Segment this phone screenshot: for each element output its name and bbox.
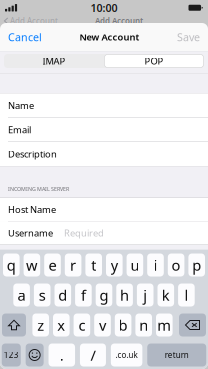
- button[interactable]: w: [24, 253, 40, 276]
- button[interactable]: h: [116, 283, 133, 306]
- button[interactable]: .co.uk: [111, 343, 142, 366]
- button[interactable]: j: [137, 283, 153, 306]
- staticText: Host Name: [8, 203, 56, 216]
- button[interactable]: f: [75, 283, 92, 306]
- staticText: /: [90, 345, 95, 365]
- button[interactable]: d: [54, 283, 71, 306]
- button[interactable]: IMAP: [4, 54, 104, 68]
- button[interactable]: v: [94, 313, 111, 336]
- button[interactable]: i: [147, 253, 164, 276]
- button[interactable]: q: [3, 253, 20, 276]
- button[interactable]: r: [65, 253, 81, 276]
- staticText: New Account: [79, 31, 139, 43]
- button[interactable]: m: [156, 313, 173, 336]
- staticText: m: [157, 315, 171, 335]
- button[interactable]: z: [32, 313, 49, 336]
- staticText: w: [26, 255, 38, 275]
- button[interactable]: y: [106, 253, 123, 276]
- staticText: h: [120, 285, 129, 305]
- button[interactable]: b: [115, 313, 131, 336]
- staticText: q: [7, 255, 16, 275]
- button[interactable]: 123: [2, 343, 21, 366]
- staticText: Username: [8, 227, 53, 239]
- staticText: t: [91, 255, 96, 275]
- staticText: INCOMING MAIL SERVER: [8, 185, 69, 192]
- button[interactable]: l: [178, 283, 195, 306]
- button[interactable]: Cancel: [0, 23, 50, 51]
- button[interactable]: /: [80, 343, 106, 366]
- staticText: .co.uk: [116, 350, 138, 360]
- button[interactable]: g: [96, 283, 112, 306]
- staticText: Email: [8, 124, 31, 136]
- staticText: u: [130, 255, 139, 275]
- button[interactable]: e: [44, 253, 61, 276]
- button[interactable]: .: [48, 343, 75, 366]
- staticText: c: [78, 315, 85, 335]
- button[interactable]: Save: [169, 23, 208, 51]
- staticText: Name: [8, 99, 34, 112]
- button[interactable]: a: [13, 283, 30, 306]
- button[interactable]: o: [168, 253, 184, 276]
- staticText: n: [139, 315, 148, 335]
- button[interactable]: Delete: [179, 313, 206, 336]
- staticText: 123: [4, 350, 19, 360]
- staticText: Cancel: [8, 30, 42, 44]
- staticText: Required: [64, 227, 104, 239]
- staticText: d: [58, 285, 67, 305]
- staticText: a: [18, 285, 26, 305]
- staticText: Description: [8, 148, 57, 160]
- button[interactable]: c: [74, 313, 90, 336]
- button[interactable]: k: [157, 283, 174, 306]
- staticText: j: [143, 285, 147, 305]
- staticText: o: [172, 255, 181, 275]
- staticText: e: [48, 255, 56, 275]
- staticText: v: [99, 315, 106, 335]
- staticText: l: [184, 285, 188, 305]
- staticText: g: [99, 285, 108, 305]
- button[interactable]: Email: [0, 118, 208, 142]
- staticText: .: [60, 345, 64, 365]
- button[interactable]: s: [34, 283, 50, 306]
- staticText: Save: [177, 30, 200, 44]
- button[interactable]: x: [53, 313, 70, 336]
- button[interactable]: Host Name: [0, 198, 208, 221]
- staticText: return: [165, 350, 189, 360]
- button[interactable]: return: [147, 343, 206, 366]
- button[interactable]: Description: [0, 142, 208, 166]
- button[interactable]: n: [135, 313, 152, 336]
- staticText: p: [192, 255, 201, 275]
- staticText: r: [70, 255, 76, 275]
- staticText: x: [57, 315, 65, 335]
- button[interactable]: Username: [0, 221, 208, 244]
- button[interactable]: p: [188, 253, 205, 276]
- staticText: IMAP: [42, 55, 65, 67]
- staticText: 10:00: [90, 1, 117, 15]
- staticText: k: [162, 285, 170, 305]
- staticText: i: [153, 255, 157, 275]
- button[interactable]: Name: [0, 93, 208, 118]
- staticText: f: [81, 285, 86, 305]
- button[interactable]: u: [127, 253, 143, 276]
- staticText: s: [39, 285, 46, 305]
- staticText: Add Account: [95, 15, 143, 26]
- staticText: z: [37, 315, 44, 335]
- button[interactable]: POP: [104, 54, 204, 68]
- staticText: b: [119, 315, 128, 335]
- button[interactable]: Shift: [2, 313, 26, 336]
- staticText: Add Account: [10, 15, 58, 26]
- button[interactable]: t: [85, 253, 102, 276]
- button[interactable]: Emoji keyboard: [26, 343, 44, 366]
- staticText: y: [111, 255, 118, 275]
- staticText: POP: [144, 55, 163, 67]
